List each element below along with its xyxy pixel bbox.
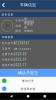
staticText: 确认并提交 — [18, 70, 38, 75]
staticText: 车辆信息 — [20, 2, 36, 7]
button[interactable]: 确认并提交 — [0, 69, 56, 77]
staticText: 年检到期 — [2, 58, 14, 61]
staticText: A1234567 — [14, 41, 30, 45]
staticText: 大众途观 — [24, 22, 33, 29]
staticText: 基本信息 — [1, 13, 13, 16]
staticText: 颜色 — [15, 29, 21, 32]
button[interactable]: Home — [23, 93, 33, 100]
staticText: 注册日期 — [2, 52, 14, 56]
staticText: 微信分享 — [22, 79, 34, 82]
staticText: 车架号 — [2, 47, 11, 50]
staticText: 车牌号 — [15, 19, 24, 22]
staticText: 品牌 — [15, 24, 21, 27]
button[interactable]: Recent apps — [39, 93, 50, 100]
button[interactable]: 微信分享 — [0, 77, 56, 85]
staticText: 2025-11 — [14, 63, 27, 67]
button[interactable]: Back — [6, 93, 17, 100]
button[interactable]: Back — [0, 0, 7, 10]
staticText: 保存到本地 — [20, 87, 35, 90]
button[interactable]: 保存到本地 — [0, 85, 56, 93]
staticText: 2026-01 — [14, 58, 27, 61]
staticText: LSV1234567 — [14, 47, 32, 50]
staticText: 发动机号 — [2, 41, 14, 45]
staticText: 2020-03 — [14, 52, 27, 56]
staticText: 详细参数 — [1, 35, 13, 39]
staticText: 珍珠白 — [24, 29, 33, 32]
staticText: 保险到期 — [2, 63, 14, 67]
staticText: 京A8888 — [24, 17, 34, 24]
